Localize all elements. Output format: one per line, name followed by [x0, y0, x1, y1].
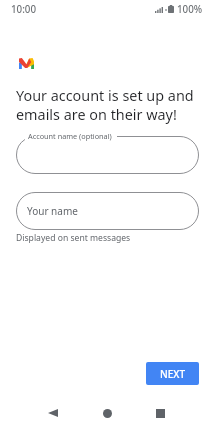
button[interactable]: NEXT [146, 362, 199, 385]
staticText: Displayed on sent messages [16, 232, 131, 244]
button[interactable]: Home [91, 400, 124, 426]
staticText: Your name [27, 204, 78, 218]
staticText: 100% [177, 3, 203, 16]
button[interactable]: Your name [16, 192, 199, 230]
button[interactable]: Recents [144, 400, 177, 426]
staticText: Your account is set up and emails are on… [16, 86, 194, 124]
staticText: 10:00 [11, 3, 37, 16]
staticText: Account name (optional) [28, 131, 112, 141]
button[interactable]: Account name (optional) [16, 136, 199, 174]
staticText: NEXT [160, 367, 186, 381]
button[interactable]: Back [36, 400, 69, 426]
